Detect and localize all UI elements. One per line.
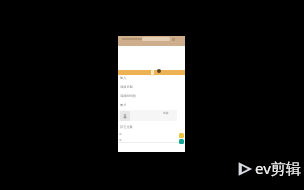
other: Add photo [120, 111, 130, 121]
button[interactable]: Search [142, 37, 170, 41]
staticText: 说 [119, 132, 122, 135]
staticText: 输入 [120, 76, 127, 80]
staticText: 选择时间段 [120, 94, 136, 98]
staticText: 其它文案 [120, 125, 133, 129]
staticText: ev剪辑 [255, 158, 301, 178]
button[interactable]: Profile [157, 69, 161, 73]
button[interactable]: Help [179, 133, 184, 138]
staticText: 选择 [163, 111, 169, 115]
staticText: 说 [119, 138, 122, 141]
button[interactable]: Add photo [118, 110, 177, 121]
staticText: 图片 [120, 103, 127, 107]
button[interactable]: Chat [179, 139, 184, 144]
staticText: 选择日期 [120, 85, 133, 89]
